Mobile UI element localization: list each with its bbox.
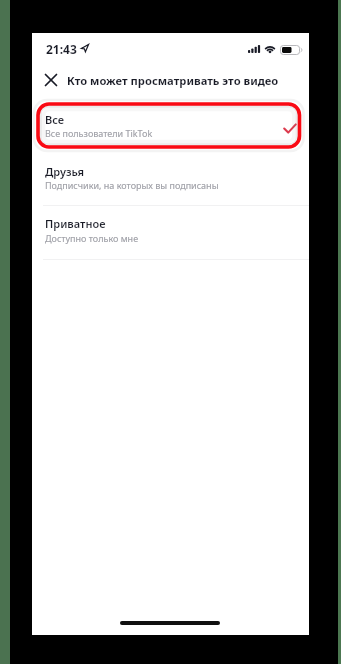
staticText: Все bbox=[45, 112, 65, 127]
staticText: Кто может просматривать это видео bbox=[67, 73, 279, 88]
button[interactable]: Друзья bbox=[32, 152, 309, 206]
staticText: Друзья bbox=[45, 164, 85, 179]
staticText: 21:43 bbox=[46, 41, 77, 57]
staticText: Приватное bbox=[45, 216, 106, 231]
staticText: Все пользователи TikTok bbox=[45, 127, 153, 139]
button[interactable]: Приватное bbox=[32, 206, 309, 260]
staticText: Подписчики, на которых вы подписаны bbox=[45, 179, 219, 191]
staticText: Доступно только мне bbox=[45, 232, 139, 244]
button[interactable] bbox=[39, 69, 63, 91]
button[interactable]: Все bbox=[32, 97, 309, 152]
